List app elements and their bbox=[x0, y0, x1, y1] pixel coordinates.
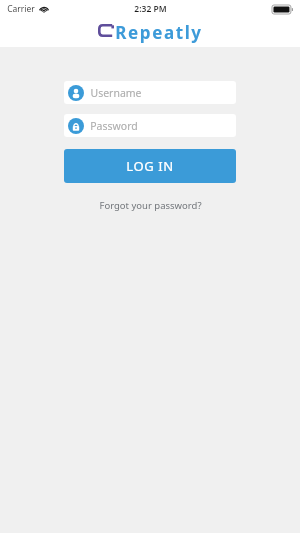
button[interactable]: LOG IN bbox=[64, 149, 236, 183]
button[interactable]: Forgot your password? bbox=[64, 197, 236, 214]
staticText: Password bbox=[90, 119, 138, 133]
staticText: Username bbox=[90, 86, 142, 100]
button[interactable]: Username bbox=[64, 81, 236, 104]
button[interactable]: Password bbox=[64, 114, 236, 137]
staticText: LOG IN bbox=[126, 157, 174, 175]
staticText: Carrier bbox=[7, 3, 35, 15]
staticText: Forgot your password? bbox=[99, 199, 202, 212]
staticText: Repeatly bbox=[115, 21, 203, 44]
staticText: 2:32 PM bbox=[134, 3, 167, 15]
